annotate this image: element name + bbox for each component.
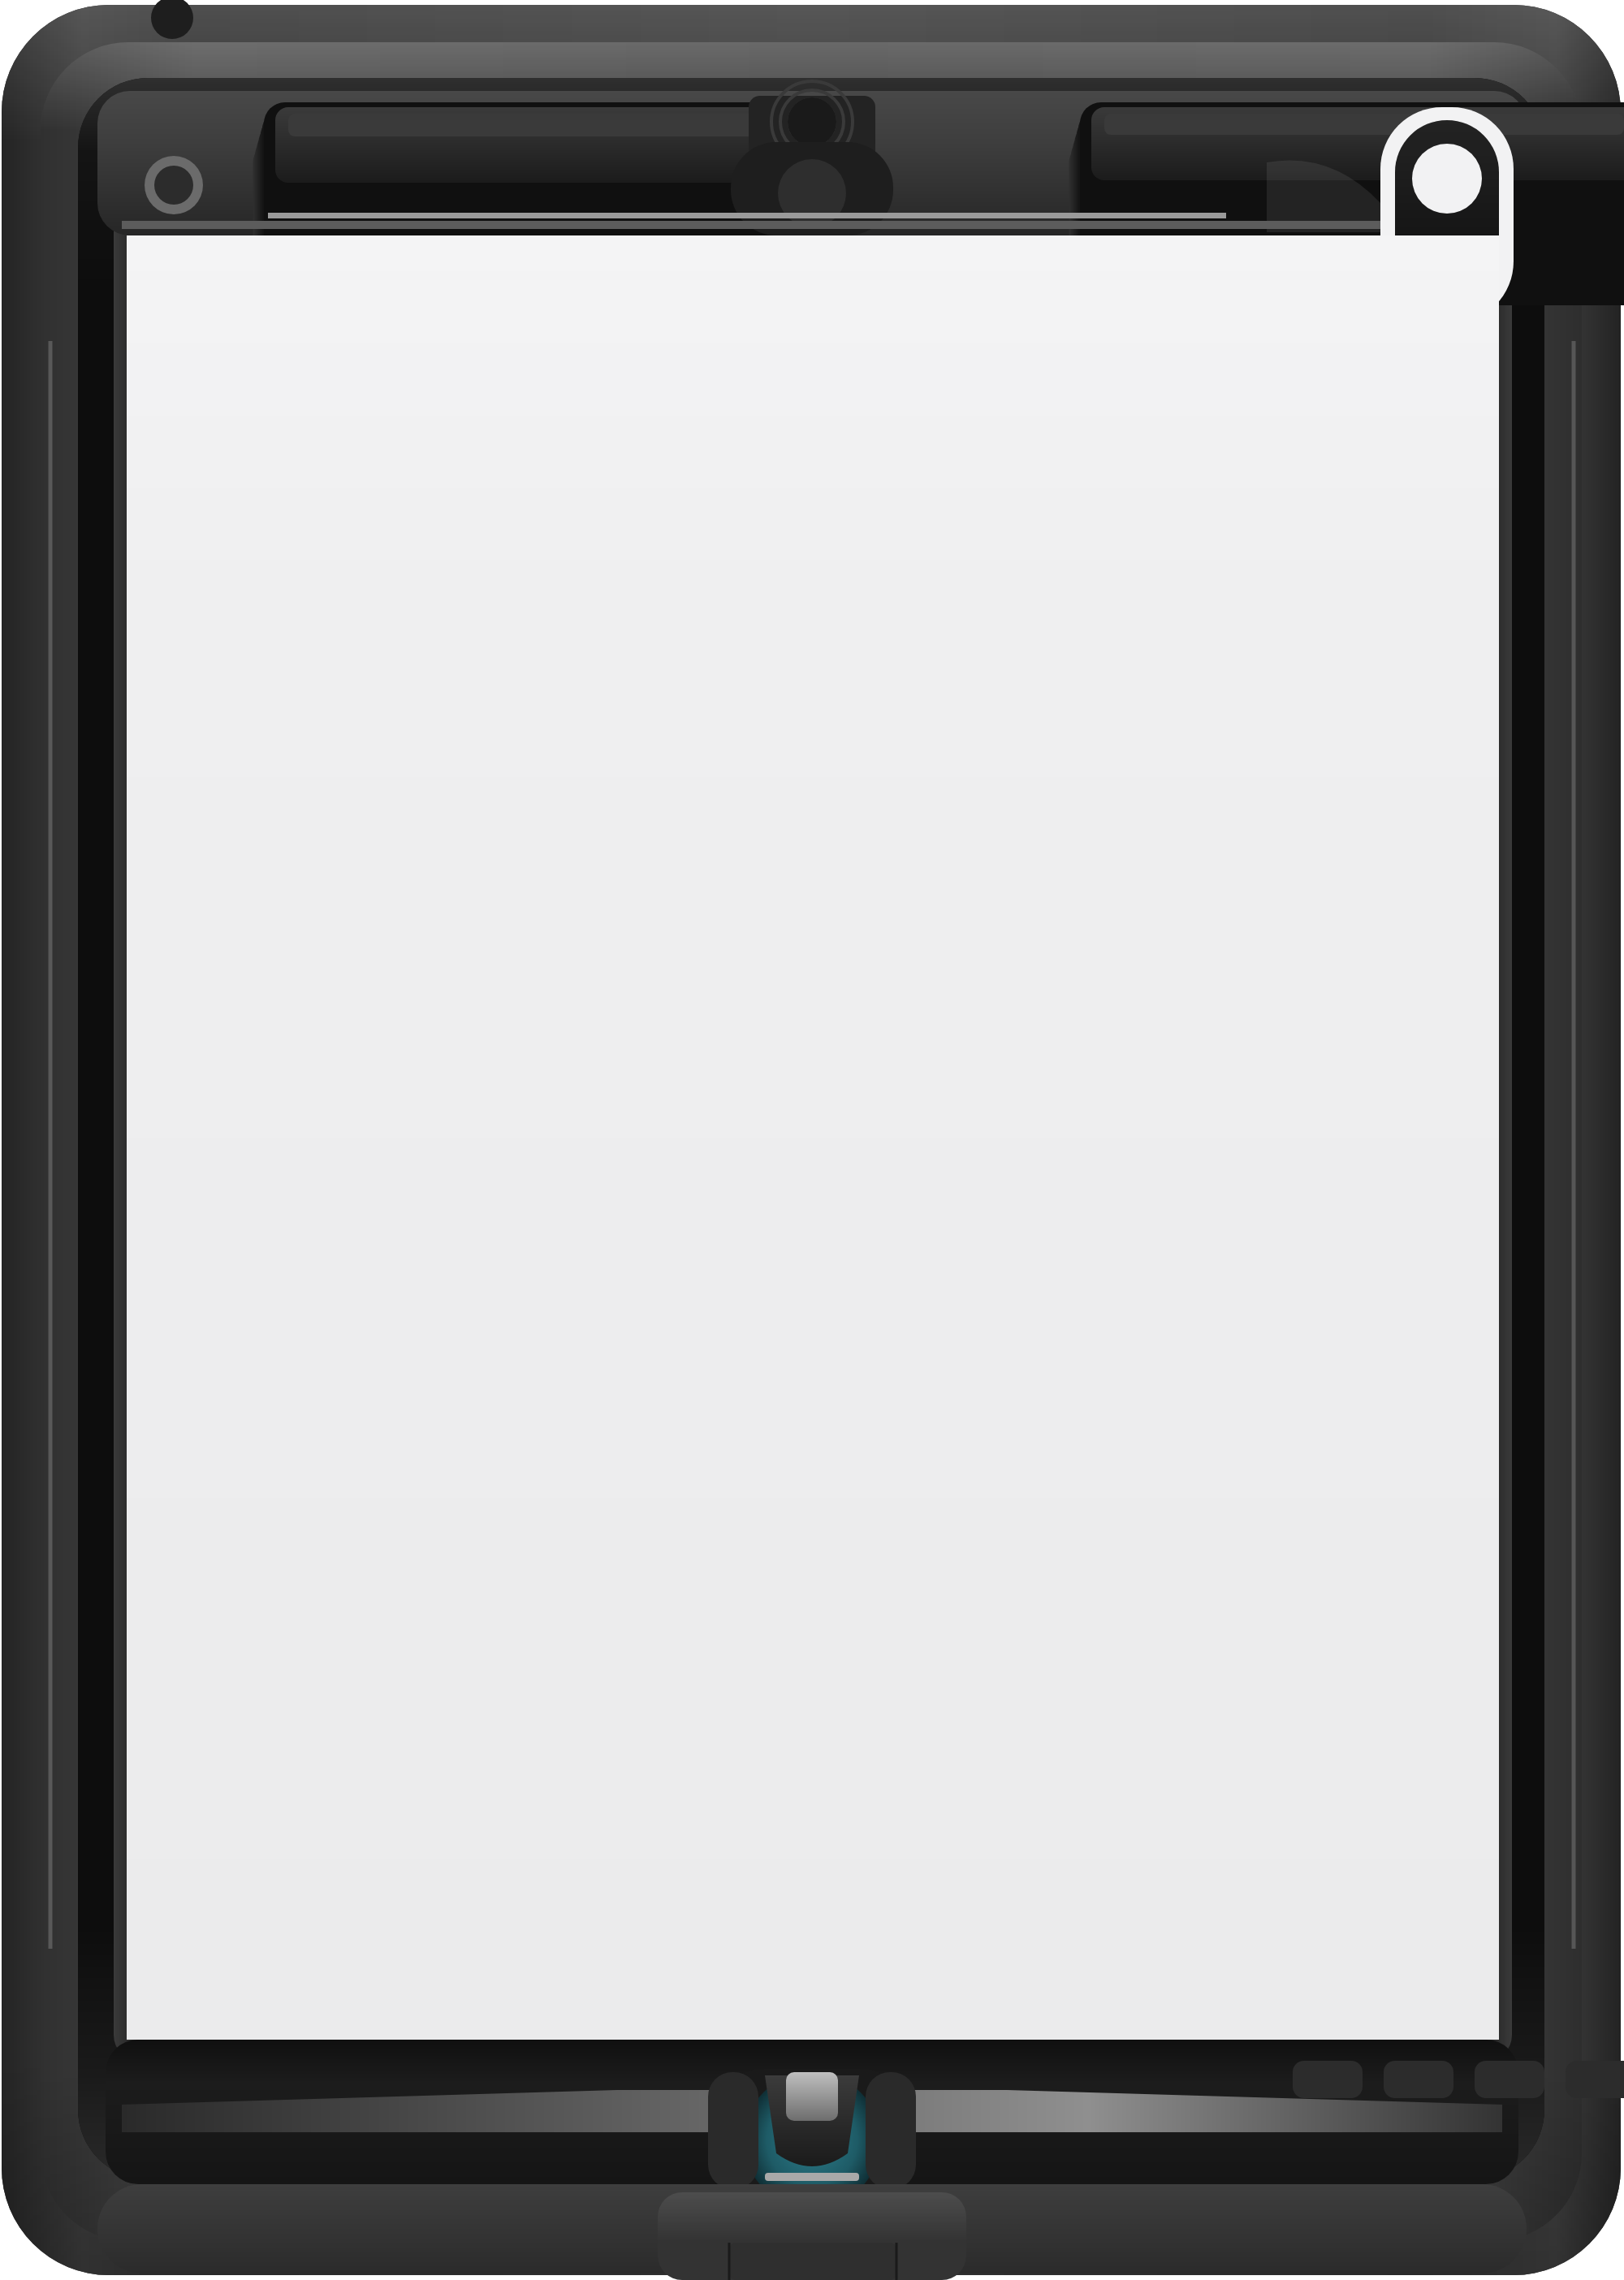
button[interactable]: Rugged waterproof tablet case product ph… [0,0,1624,2280]
